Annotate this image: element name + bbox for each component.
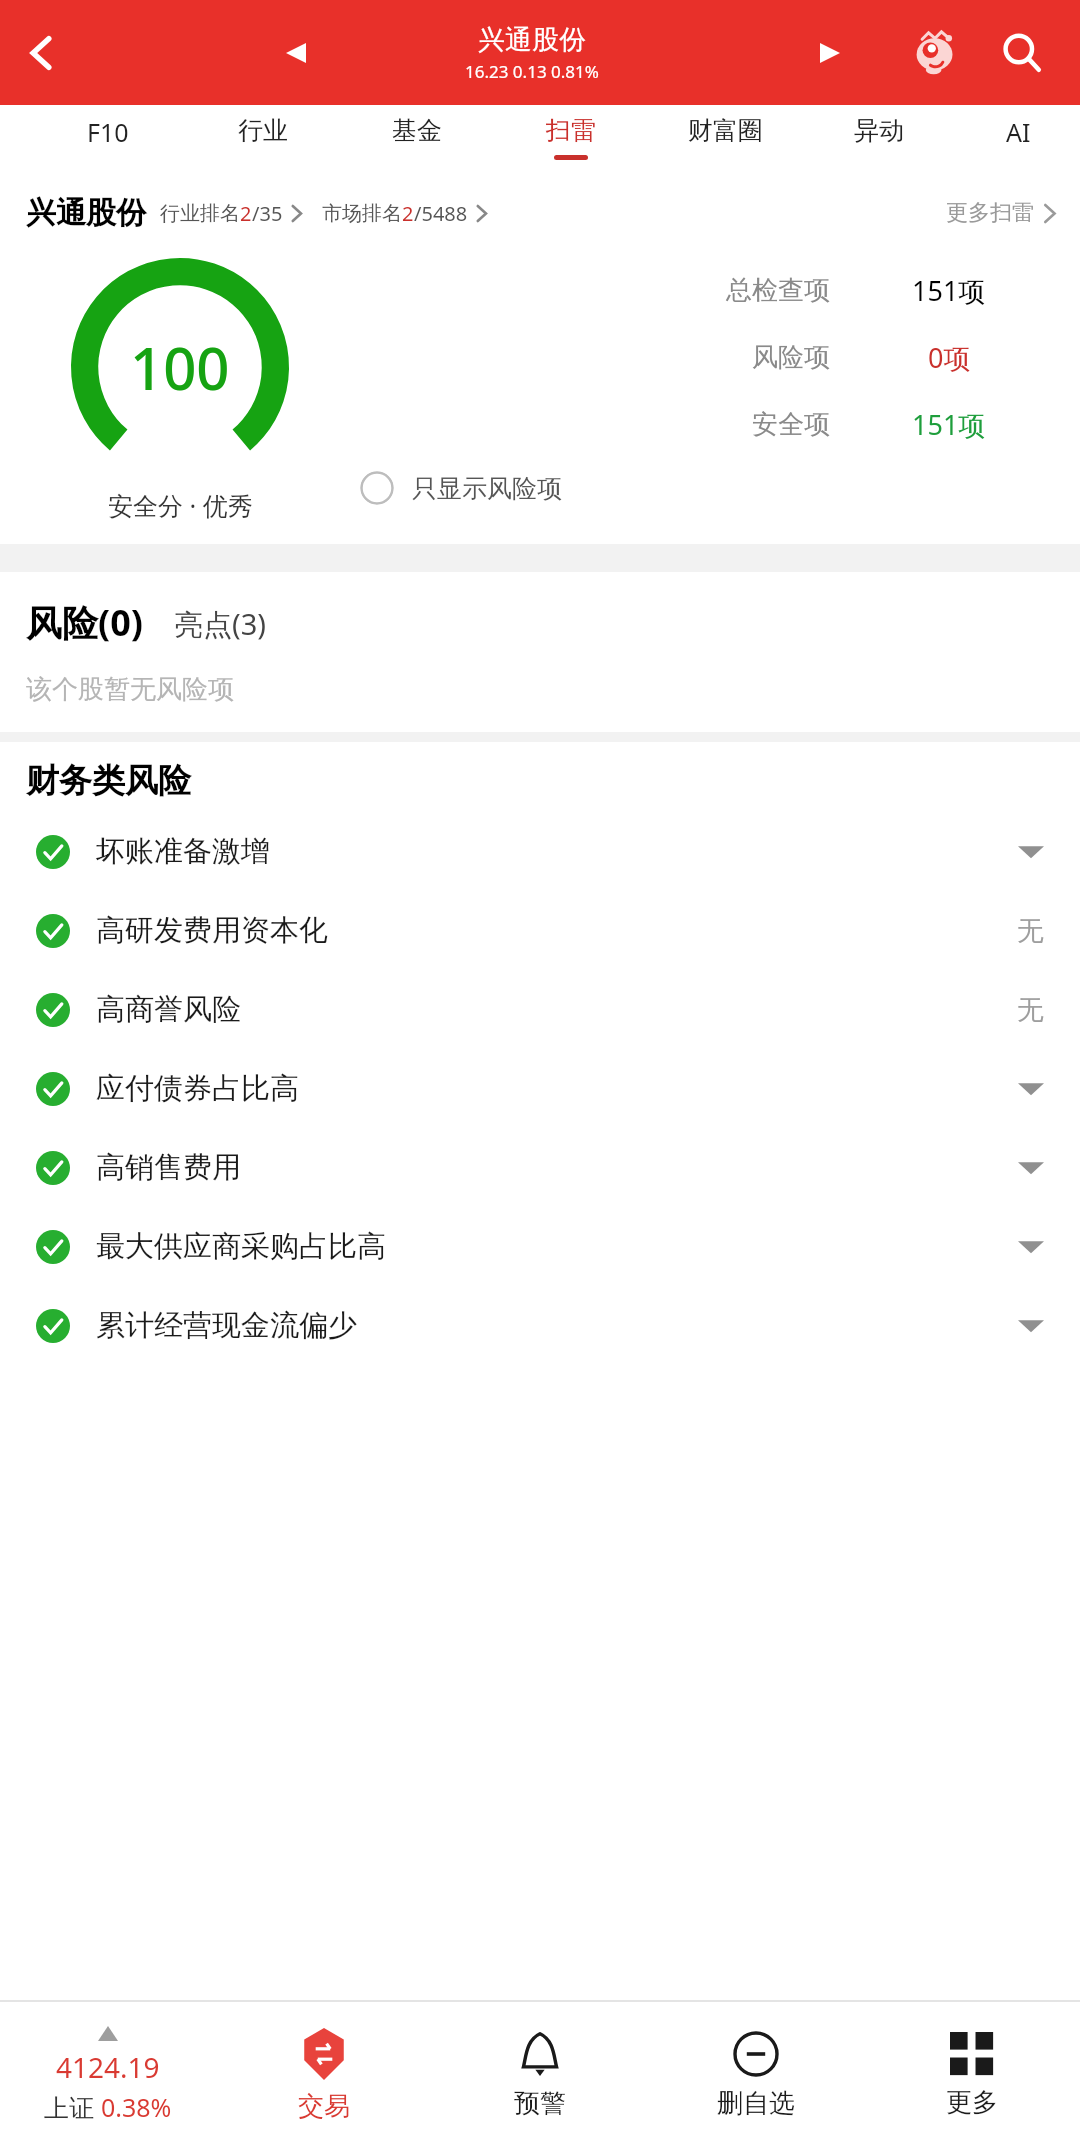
button[interactable]: 应付债券占比高	[0, 1049, 1080, 1128]
staticText: 风险项	[752, 341, 830, 374]
button[interactable]: 只显示风险项	[360, 471, 562, 505]
staticText: 累计经营现金流偏少	[96, 1307, 357, 1344]
button[interactable]: 基金	[340, 105, 494, 180]
staticText: 16.23 0.13 0.81%	[465, 60, 599, 83]
button[interactable]: 累计经营现金流偏少	[0, 1286, 1080, 1365]
staticText: 安全项	[752, 408, 830, 441]
staticText: 应付债券占比高	[96, 1070, 299, 1107]
staticText: 交易	[298, 2090, 350, 2123]
staticText: 上证	[44, 2090, 101, 2124]
button[interactable]: 最大供应商采购占比高	[0, 1207, 1080, 1286]
staticText: 市场排名	[322, 201, 402, 226]
staticText: 更多	[946, 2086, 998, 2119]
button[interactable]: 高销售费用	[0, 1128, 1080, 1207]
button[interactable]: 更多扫雷	[946, 199, 1058, 227]
staticText: 坏账准备激增	[96, 833, 270, 870]
button[interactable]: 异动	[802, 105, 956, 180]
button[interactable]: 4124.19	[0, 2001, 216, 2149]
button[interactable]: 财富圈	[648, 105, 802, 180]
button[interactable]: 市场排名	[322, 200, 489, 227]
staticText: 2	[240, 200, 252, 227]
button[interactable]: 行业排名	[160, 200, 304, 227]
staticText: 预警	[514, 2087, 566, 2120]
button[interactable]: Previous stock	[268, 25, 324, 81]
staticText: 无	[1017, 914, 1044, 948]
button[interactable]: Search	[986, 17, 1058, 89]
staticText: 行业排名	[160, 201, 240, 226]
button[interactable]: 更多	[864, 2001, 1080, 2149]
staticText: /5488	[414, 200, 468, 227]
button[interactable]: Next stock	[802, 25, 858, 81]
staticText: 4124.19	[56, 2048, 160, 2086]
staticText: 总检查项	[726, 274, 830, 307]
staticText: 0.38%	[101, 2090, 172, 2124]
staticText: 高商誉风险	[96, 991, 241, 1028]
staticText: 行业	[238, 115, 288, 146]
staticText: 扫雷	[546, 115, 596, 146]
staticText: AI	[1006, 115, 1031, 149]
staticText: 财富圈	[688, 115, 763, 146]
button[interactable]: AI	[956, 105, 1080, 180]
button[interactable]: 交易	[216, 2001, 432, 2149]
staticText: 只显示风险项	[412, 473, 562, 504]
button[interactable]: 高研发费用资本化	[0, 891, 1080, 970]
staticText: 兴通股份	[478, 23, 586, 57]
staticText: 高销售费用	[96, 1149, 241, 1186]
staticText: 最大供应商采购占比高	[96, 1228, 386, 1265]
staticText: 该个股暂无风险项	[26, 673, 234, 706]
button[interactable]: 高商誉风险	[0, 970, 1080, 1049]
staticText: 删自选	[717, 2087, 795, 2120]
staticText: 0项	[928, 339, 971, 376]
staticText: 高研发费用资本化	[96, 912, 328, 949]
staticText: 2	[402, 200, 414, 227]
staticText: F10	[87, 115, 129, 149]
staticText: 安全分 · 优秀	[108, 488, 253, 522]
staticText: /35	[252, 200, 283, 227]
staticText: 151项	[912, 272, 986, 309]
staticText: 151项	[912, 406, 986, 443]
staticText: 100	[130, 328, 230, 407]
button[interactable]: 风险(0)	[26, 598, 144, 647]
staticText: 兴通股份	[26, 194, 146, 232]
button[interactable]: 扫雷	[494, 105, 648, 180]
button[interactable]: 行业	[185, 105, 340, 180]
button[interactable]: Assistant	[900, 18, 970, 88]
staticText: 财务类风险	[26, 760, 191, 802]
staticText: 基金	[392, 115, 442, 146]
button[interactable]: 删自选	[648, 2001, 864, 2149]
staticText: 亮点(3)	[174, 604, 266, 644]
button[interactable]: Back	[10, 21, 74, 85]
button[interactable]: F10	[30, 105, 185, 180]
staticText: 无	[1017, 993, 1044, 1027]
staticText: 更多扫雷	[946, 199, 1034, 227]
button[interactable]: 坏账准备激增	[0, 812, 1080, 891]
button[interactable]: 亮点(3)	[174, 604, 266, 647]
staticText: 异动	[854, 115, 904, 146]
button[interactable]: 预警	[432, 2001, 648, 2149]
staticText: 风险(0)	[26, 598, 144, 647]
